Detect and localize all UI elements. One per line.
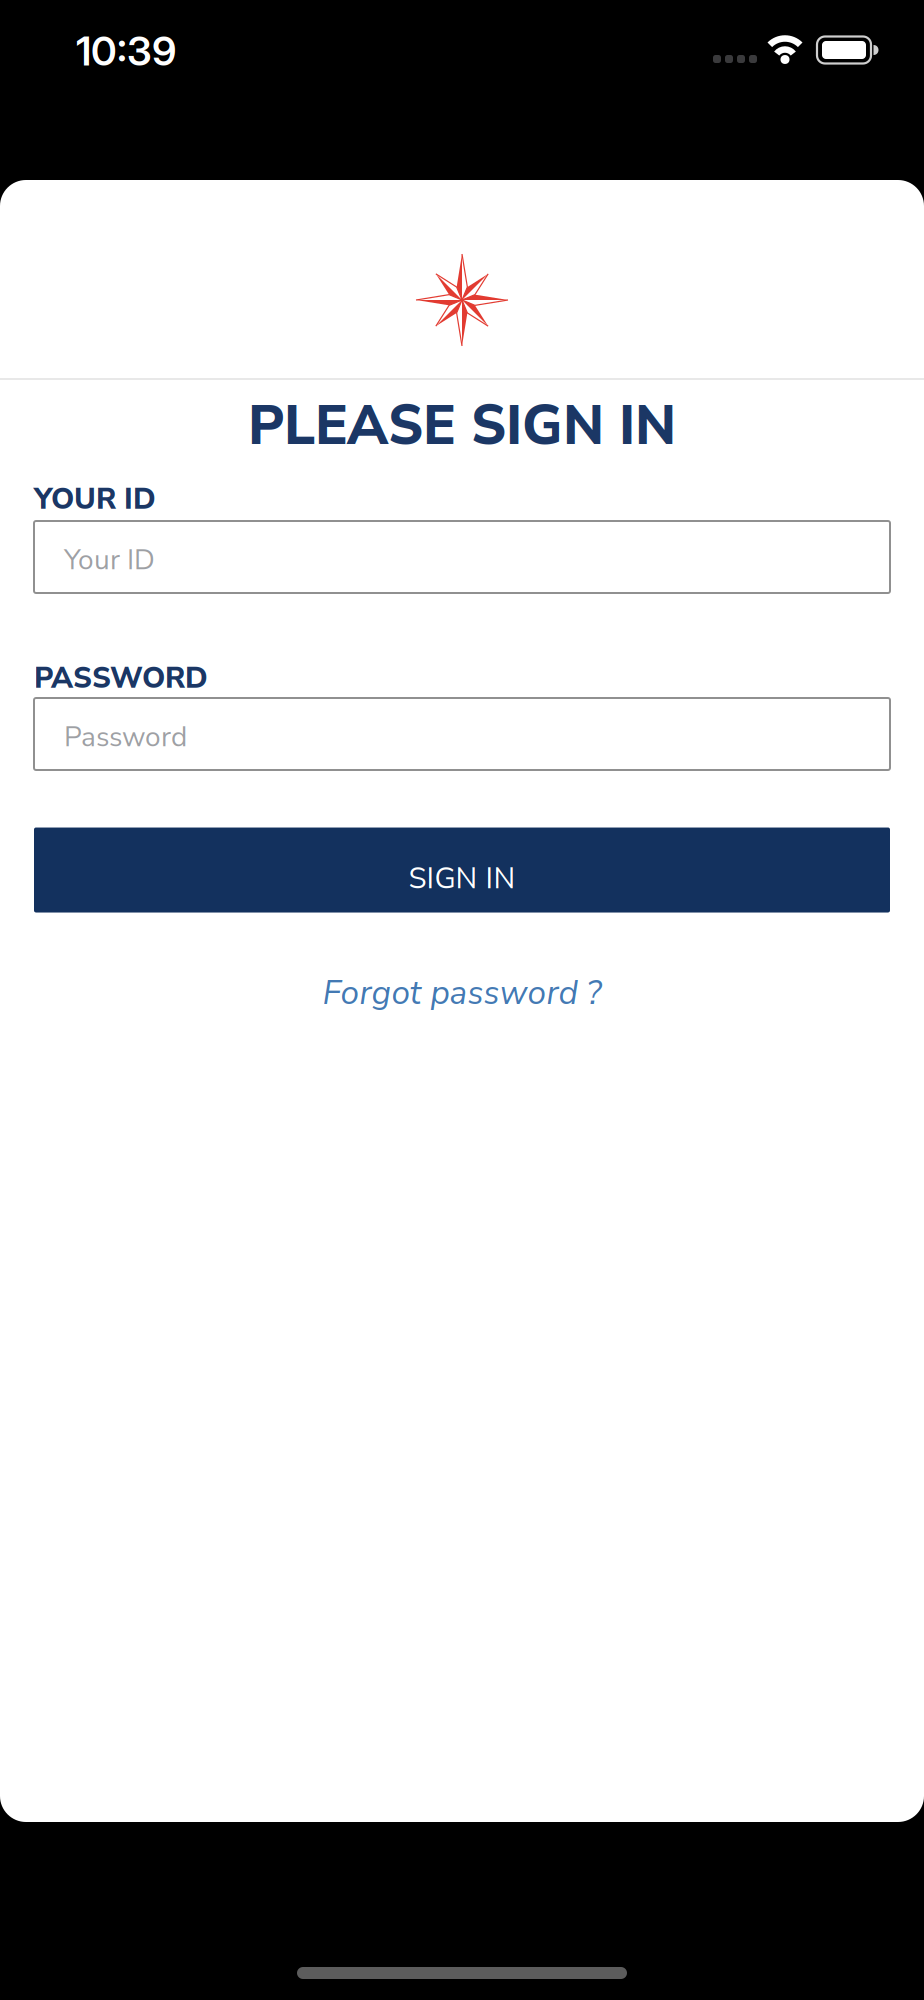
button[interactable]: Your ID <box>34 521 890 593</box>
staticText: PASSWORD <box>34 658 208 698</box>
staticText: Your ID <box>64 541 155 579</box>
button[interactable]: Forgot password ? <box>322 970 601 1016</box>
staticText: Forgot password ? <box>322 970 601 1016</box>
staticText: PLEASE SIGN IN <box>248 389 676 463</box>
staticText: SIGN IN <box>408 858 515 898</box>
button[interactable]: SIGN IN <box>34 827 890 912</box>
button[interactable]: Password <box>34 698 890 770</box>
staticText: 10:39 <box>76 27 176 75</box>
staticText: YOUR ID <box>34 479 156 519</box>
staticText: Password <box>64 718 187 756</box>
